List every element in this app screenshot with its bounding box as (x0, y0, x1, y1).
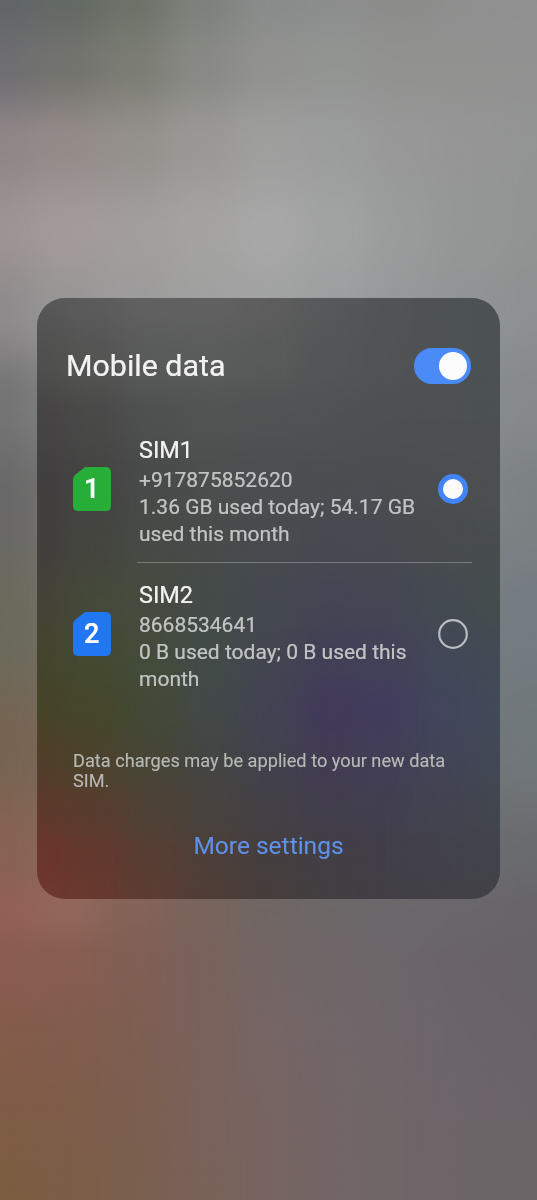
staticText: 0 B used today; 0 B used this month (139, 640, 417, 692)
staticText: Mobile data (66, 348, 226, 384)
staticText: SIM2 (139, 581, 194, 609)
button[interactable]: More settings (37, 819, 500, 871)
staticText: SIM1 (139, 436, 194, 464)
staticText: +917875852620 (139, 468, 293, 493)
staticText: 8668534641 (139, 613, 258, 638)
staticText: Data charges may be applied to your new … (73, 750, 448, 792)
button[interactable]: Mobile data on (414, 348, 471, 384)
button[interactable]: Select SIM2 (423, 604, 483, 664)
staticText: 2 (84, 618, 100, 650)
staticText: More settings (193, 831, 344, 860)
button[interactable]: SIM1 selected (423, 459, 483, 519)
staticText: 1.36 GB used today; 54.17 GB used this m… (139, 495, 417, 547)
staticText: 1 (84, 473, 100, 505)
